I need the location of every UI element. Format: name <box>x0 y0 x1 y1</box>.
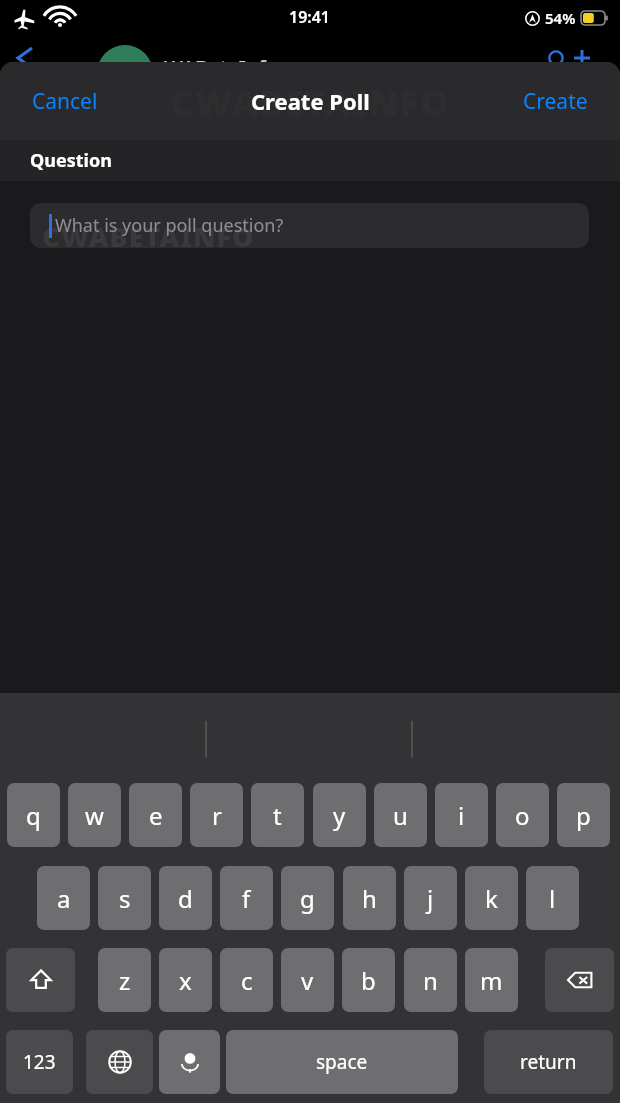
button[interactable]: v <box>281 948 334 1012</box>
staticText: g <box>300 882 315 915</box>
staticText: f <box>242 882 251 915</box>
button[interactable]: i <box>435 783 488 847</box>
staticText: k <box>485 882 498 915</box>
staticText: Create Poll <box>251 86 370 116</box>
button[interactable]: 123 <box>6 1030 73 1094</box>
button[interactable]: u <box>374 783 427 847</box>
staticText: return <box>520 1049 577 1075</box>
staticText: CWABETAINFO <box>170 78 450 127</box>
staticText: p <box>576 799 591 832</box>
button[interactable]: h <box>343 866 396 930</box>
button[interactable]: Shift <box>6 948 75 1012</box>
staticText: t <box>273 799 282 832</box>
button[interactable]: s <box>98 866 151 930</box>
staticText: z <box>119 964 131 997</box>
staticText: r <box>212 799 222 832</box>
button[interactable]: q <box>7 783 60 847</box>
staticText: b <box>361 964 376 997</box>
button[interactable]: space <box>226 1030 458 1094</box>
staticText: Create <box>523 87 588 116</box>
button[interactable]: Change keyboard language <box>86 1030 153 1094</box>
staticText: x <box>179 964 192 997</box>
button[interactable]: z <box>98 948 151 1012</box>
staticText: 19:41 <box>289 6 331 28</box>
staticText: d <box>178 882 193 915</box>
button[interactable]: o <box>496 783 549 847</box>
button[interactable]: r <box>190 783 243 847</box>
button[interactable]: Cancel <box>14 77 116 126</box>
staticText: l <box>549 882 556 915</box>
staticText: w <box>85 799 104 832</box>
button[interactable]: p <box>557 783 610 847</box>
button[interactable]: Dictate <box>159 1030 220 1094</box>
button[interactable]: return <box>484 1030 613 1094</box>
button[interactable]: l <box>526 866 579 930</box>
staticText: h <box>362 882 377 915</box>
button[interactable]: f <box>220 866 273 930</box>
staticText: o <box>515 799 530 832</box>
button[interactable]: t <box>251 783 304 847</box>
button[interactable]: j <box>404 866 457 930</box>
button[interactable]: a <box>37 866 90 930</box>
staticText: v <box>301 964 314 997</box>
staticText: a <box>57 882 71 915</box>
staticText: u <box>393 799 408 832</box>
staticText: WABetaInfo <box>164 54 278 81</box>
button[interactable]: k <box>465 866 518 930</box>
button[interactable]: Create <box>505 77 606 126</box>
staticText: m <box>480 964 503 997</box>
button[interactable]: Backspace <box>545 948 614 1012</box>
staticText: 54% <box>545 8 576 28</box>
staticText: n <box>423 964 438 997</box>
button[interactable]: m <box>465 948 518 1012</box>
button[interactable]: n <box>404 948 457 1012</box>
button[interactable]: c <box>220 948 273 1012</box>
staticText: i <box>458 799 465 832</box>
button[interactable]: y <box>313 783 366 847</box>
button[interactable]: x <box>159 948 212 1012</box>
button[interactable]: g <box>281 866 334 930</box>
button[interactable]: e <box>129 783 182 847</box>
staticText: space <box>316 1049 368 1075</box>
staticText: s <box>119 882 131 915</box>
staticText: CWABETAINFO <box>42 218 255 248</box>
staticText: 123 <box>23 1049 56 1075</box>
staticText: q <box>26 799 41 832</box>
staticText: Question <box>30 148 112 173</box>
button[interactable]: CWABETAINFO <box>30 203 589 248</box>
button[interactable]: w <box>68 783 121 847</box>
button[interactable]: d <box>159 866 212 930</box>
button[interactable]: b <box>342 948 395 1012</box>
staticText: Cancel <box>32 87 98 116</box>
staticText: j <box>427 882 434 915</box>
staticText: y <box>333 799 346 832</box>
staticText: What is your poll question? <box>55 213 284 238</box>
staticText: c <box>241 964 253 997</box>
staticText: e <box>149 799 163 832</box>
